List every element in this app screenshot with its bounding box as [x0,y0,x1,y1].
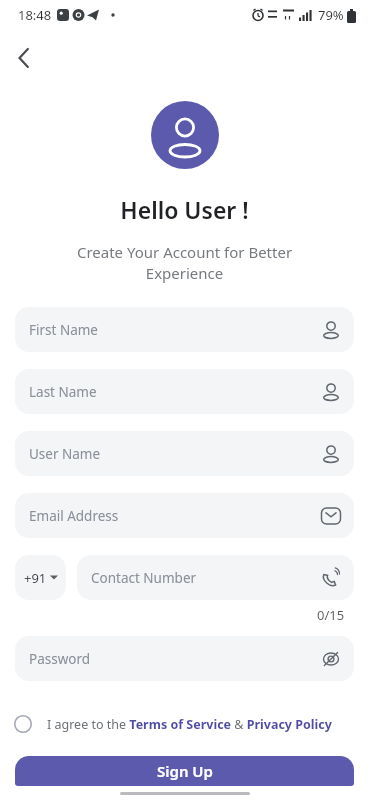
staticText: Password [29,650,319,668]
staticText: Create Your Account for Better Experienc… [0,242,369,284]
staticText: I agree to the Terms of Service & Privac… [47,716,332,733]
button[interactable]: Sign Up [15,756,354,786]
button[interactable]: Contact Number [77,555,354,600]
button[interactable]: Email Address [15,493,354,538]
staticText: 18:48 [18,6,52,24]
button[interactable]: Password [15,636,354,681]
button[interactable]: User Name [15,431,354,476]
button[interactable] [8,42,40,74]
staticText: First Name [29,321,319,339]
staticText: Sign Up [157,761,213,781]
button[interactable]: Last Name [15,369,354,414]
button[interactable]: +91 [15,555,66,600]
staticText: User Name [29,445,319,463]
button[interactable]: First Name [15,307,354,352]
staticText: 0/15 [317,606,345,624]
staticText: Last Name [29,383,319,401]
staticText: +91 [24,569,47,587]
staticText: Email Address [29,507,319,525]
staticText: Hello User ! [0,194,369,225]
staticText: Contact Number [91,569,319,587]
button[interactable]: I agree to the Terms of Service & Privac… [13,714,369,734]
staticText: 79% [318,6,344,24]
